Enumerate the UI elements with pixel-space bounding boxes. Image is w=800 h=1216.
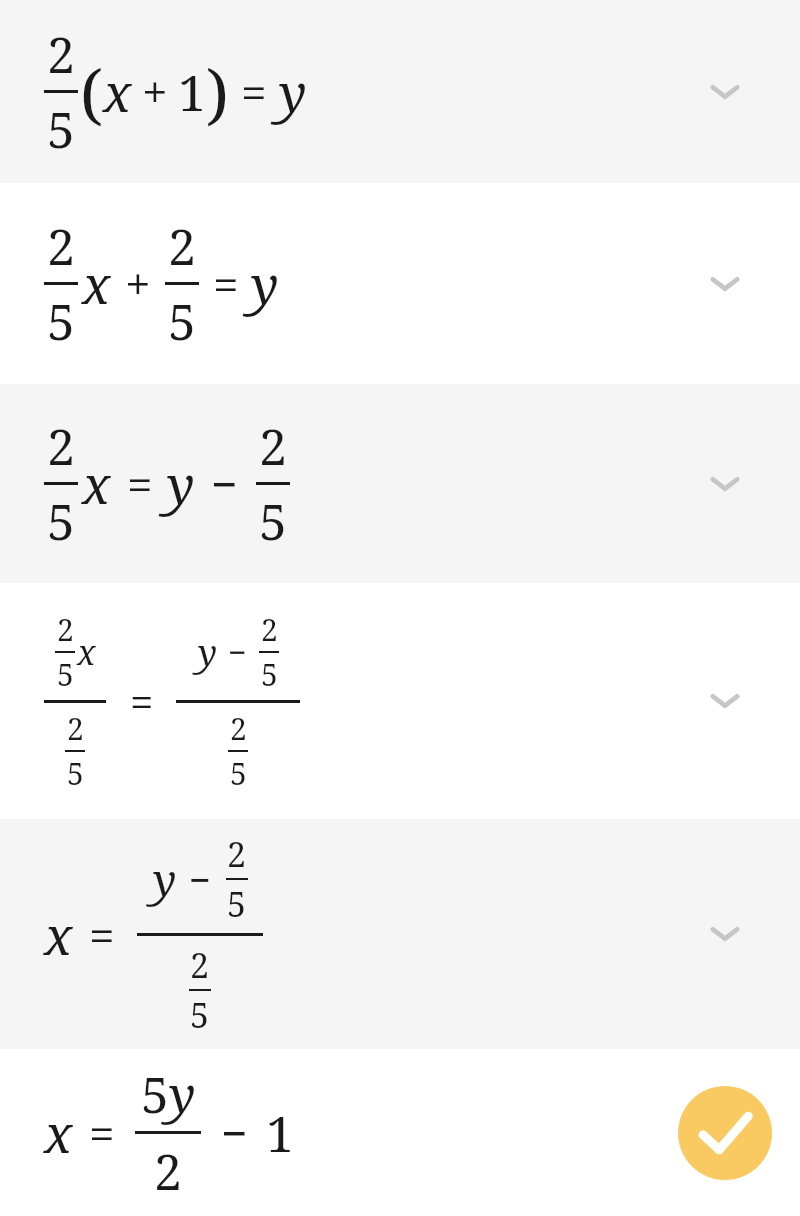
staticText: − [221, 1101, 248, 1164]
staticText: 5 [141, 1060, 169, 1128]
staticText: = [241, 60, 267, 123]
staticText: = [89, 1101, 115, 1164]
staticText: 5 [168, 287, 196, 355]
staticText: 2 [47, 212, 75, 280]
staticText: x [44, 899, 73, 970]
staticText: 1 [178, 58, 206, 126]
staticText: 5 [230, 753, 247, 794]
staticText: 5 [47, 95, 75, 163]
staticText: 5 [67, 753, 84, 794]
staticText: = [130, 673, 154, 730]
button[interactable]: 2 [0, 583, 800, 819]
staticText: x [103, 56, 132, 127]
staticText: 2 [230, 708, 247, 749]
staticText: y [198, 628, 218, 677]
staticText: 5 [47, 487, 75, 555]
staticText: 2 [190, 942, 210, 988]
staticText: 5 [190, 992, 210, 1038]
staticText: x [82, 448, 111, 519]
staticText: = [127, 452, 153, 515]
staticText: ) [206, 47, 229, 137]
staticText: + [125, 252, 151, 315]
staticText: 1 [266, 1099, 294, 1167]
staticText: y [279, 56, 307, 127]
staticText: 5 [259, 487, 287, 555]
staticText: y [169, 1060, 196, 1128]
button[interactable]: x [0, 819, 800, 1049]
staticText: − [228, 630, 247, 674]
staticText: ( [80, 47, 103, 137]
staticText: 2 [57, 609, 74, 650]
staticText: 5 [261, 654, 278, 695]
staticText: 2 [227, 831, 247, 877]
staticText: x [82, 248, 111, 319]
button[interactable]: 2 [0, 183, 800, 384]
button[interactable]: 2 [0, 0, 800, 183]
staticText: 2 [261, 609, 278, 650]
staticText: x [44, 1097, 73, 1168]
staticText: 5 [47, 287, 75, 355]
staticText: = [89, 903, 115, 966]
staticText: x [77, 629, 96, 675]
staticText: 5 [57, 654, 74, 695]
staticText: = [213, 252, 239, 315]
staticText: 2 [154, 1137, 182, 1205]
staticText: 5 [227, 881, 247, 927]
staticText: y [153, 849, 177, 909]
staticText: 2 [168, 212, 196, 280]
staticText: + [142, 60, 168, 123]
staticText: 2 [47, 20, 75, 88]
staticText: 2 [259, 412, 287, 480]
staticText: − [189, 853, 212, 905]
staticText: 2 [67, 708, 84, 749]
button[interactable]: Solution correct [678, 1086, 772, 1180]
staticText: 2 [47, 412, 75, 480]
button[interactable]: x [0, 1049, 800, 1216]
staticText: − [211, 452, 238, 515]
staticText: y [167, 448, 195, 519]
staticText: y [251, 248, 279, 319]
button[interactable]: 2 [0, 384, 800, 583]
